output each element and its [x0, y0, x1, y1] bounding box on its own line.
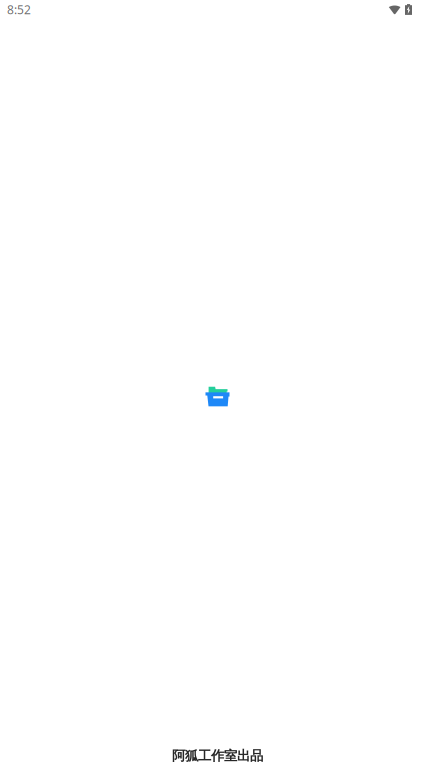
staticText: 阿狐工作室出品: [172, 748, 263, 764]
staticText: 8:52: [7, 1, 31, 17]
